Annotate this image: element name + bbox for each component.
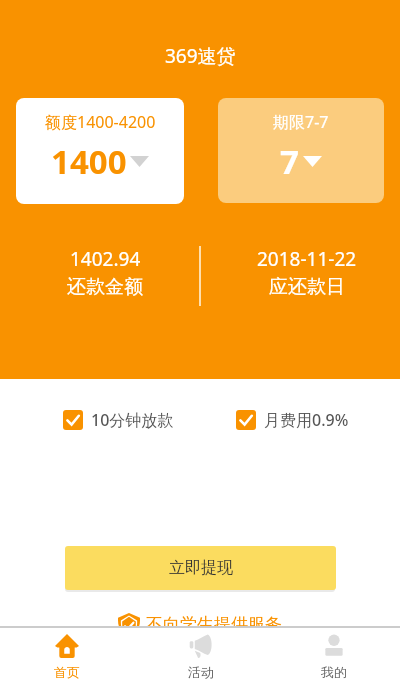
staticText: 期限7-7 bbox=[273, 111, 329, 133]
staticText: 首页 bbox=[54, 664, 80, 680]
staticText: 7 bbox=[280, 139, 299, 184]
staticText: 不向学生提供服务 bbox=[146, 614, 282, 635]
staticText: 应还款日 bbox=[269, 275, 345, 299]
staticText: 2018-11-22 bbox=[257, 246, 357, 272]
staticText: 额度1400-4200 bbox=[45, 111, 156, 133]
button[interactable]: 10分钟放款 bbox=[63, 409, 174, 431]
staticText: 369速贷 bbox=[165, 43, 236, 69]
button[interactable]: 活动 bbox=[134, 628, 267, 685]
staticText: 活动 bbox=[188, 664, 214, 680]
staticText: 还款金额 bbox=[67, 275, 143, 299]
staticText: 月费用0.9% bbox=[264, 409, 349, 431]
button[interactable]: 月费用0.9% bbox=[236, 409, 349, 431]
staticText: 10分钟放款 bbox=[91, 409, 174, 431]
staticText: 1402.94 bbox=[70, 246, 141, 272]
button[interactable]: 立即提现 bbox=[65, 546, 336, 590]
staticText: 立即提现 bbox=[169, 558, 233, 578]
button[interactable]: 首页 bbox=[0, 628, 134, 685]
button[interactable]: 期限7-7 bbox=[218, 98, 384, 203]
staticText: 1400 bbox=[51, 139, 127, 184]
staticText: 我的 bbox=[321, 664, 347, 680]
button[interactable]: 我的 bbox=[267, 628, 400, 685]
button[interactable]: 额度1400-4200 bbox=[16, 98, 184, 204]
